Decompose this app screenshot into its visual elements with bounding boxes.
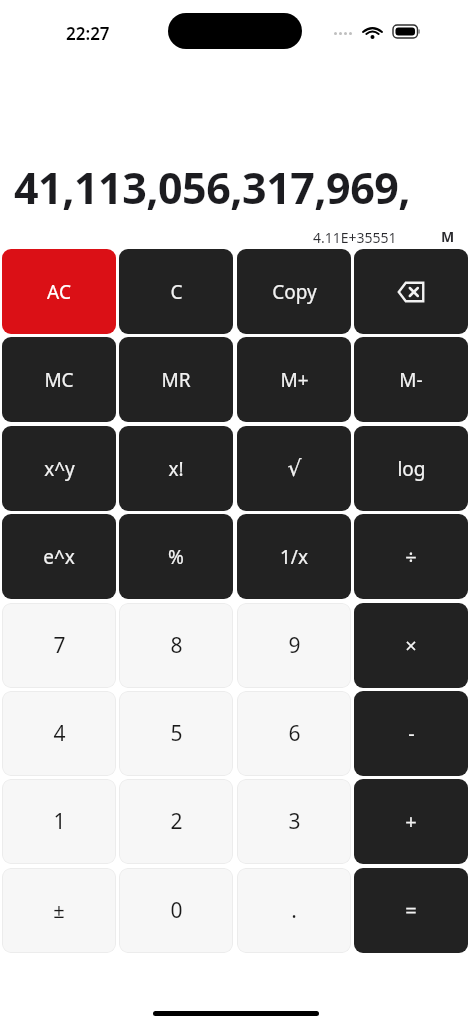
button[interactable]: 2 — [119, 779, 233, 864]
button[interactable]: % — [119, 514, 233, 599]
button[interactable]: = — [354, 868, 468, 953]
staticText: M — [441, 227, 455, 246]
button[interactable]: 1 — [2, 779, 116, 864]
staticText: × — [405, 632, 417, 659]
button[interactable]: + — [354, 779, 468, 864]
staticText: e^x — [43, 544, 75, 570]
staticText: 5 — [170, 719, 183, 748]
button[interactable]: 9 — [237, 603, 351, 688]
staticText: M+ — [280, 367, 309, 393]
staticText: ± — [53, 897, 65, 924]
staticText: 4 — [53, 719, 66, 748]
staticText: 9 — [288, 631, 301, 660]
staticText: = — [405, 897, 417, 924]
staticText: . — [291, 896, 297, 925]
button[interactable]: 5 — [119, 691, 233, 776]
button[interactable]: x! — [119, 426, 233, 511]
staticText: - — [408, 720, 415, 747]
staticText: C — [170, 279, 183, 305]
button[interactable]: √ — [237, 426, 351, 511]
button[interactable]: 8 — [119, 603, 233, 688]
staticText: 7 — [53, 631, 66, 660]
staticText: % — [168, 544, 184, 570]
staticText: √ — [287, 456, 302, 482]
staticText: 3 — [288, 807, 301, 836]
button[interactable]: x^y — [2, 426, 116, 511]
staticText: Copy — [272, 279, 317, 305]
staticText: + — [405, 808, 417, 835]
staticText: 41,113,056,317,969, — [14, 158, 411, 217]
button[interactable]: - — [354, 691, 468, 776]
staticText: M- — [399, 367, 423, 393]
button[interactable]: 3 — [237, 779, 351, 864]
button[interactable]: log — [354, 426, 468, 511]
staticText: MC — [44, 367, 74, 393]
button[interactable]: MR — [119, 337, 233, 422]
staticText: x^y — [44, 456, 75, 482]
button[interactable]: Copy — [237, 249, 351, 334]
button[interactable]: . — [237, 868, 351, 953]
button[interactable]: ÷ — [354, 514, 468, 599]
button[interactable]: ± — [2, 868, 116, 953]
button[interactable]: e^x — [2, 514, 116, 599]
staticText: 1 — [53, 807, 66, 836]
staticText: log — [397, 456, 426, 482]
button[interactable]: 7 — [2, 603, 116, 688]
staticText: MR — [161, 367, 191, 393]
staticText: AC — [47, 279, 71, 305]
staticText: 0 — [170, 896, 183, 925]
button[interactable]: × — [354, 603, 468, 688]
staticText: 22:27 — [66, 22, 110, 45]
button[interactable]: MC — [2, 337, 116, 422]
button[interactable]: 6 — [237, 691, 351, 776]
button[interactable]: AC — [2, 249, 116, 334]
button[interactable]: M- — [354, 337, 468, 422]
button[interactable]: Backspace — [354, 249, 468, 334]
button[interactable]: M+ — [237, 337, 351, 422]
button[interactable]: 4 — [2, 691, 116, 776]
staticText: 2 — [170, 807, 183, 836]
staticText: x! — [168, 456, 184, 482]
button[interactable]: C — [119, 249, 233, 334]
staticText: 8 — [170, 631, 183, 660]
staticText: 1/x — [280, 544, 308, 570]
staticText: 4.11E+35551 — [313, 228, 397, 247]
staticText: 6 — [288, 719, 301, 748]
staticText: ÷ — [405, 543, 417, 570]
button[interactable]: 0 — [119, 868, 233, 953]
button[interactable]: 1/x — [237, 514, 351, 599]
